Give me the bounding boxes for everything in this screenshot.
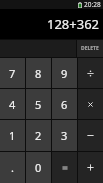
button[interactable]: 4: [0, 89, 25, 119]
button[interactable]: DELETE: [77, 40, 103, 57]
staticText: 6: [61, 97, 68, 112]
button[interactable]: Divide: [78, 58, 103, 88]
staticText: 20:28: [84, 0, 101, 9]
staticText: DELETE: [81, 45, 99, 52]
button[interactable]: 0: [26, 152, 51, 183]
other: Battery: [78, 2, 82, 8]
staticText: 8: [35, 66, 42, 81]
button[interactable]: Minus: [78, 120, 103, 151]
staticText: 9: [61, 66, 68, 81]
button[interactable]: .: [0, 152, 25, 183]
button[interactable]: 3: [52, 120, 77, 151]
staticText: 3: [61, 128, 68, 143]
button[interactable]: Multiply: [78, 89, 103, 119]
staticText: 4: [9, 97, 16, 112]
staticText: 2: [35, 128, 42, 143]
button[interactable]: 7: [0, 58, 25, 88]
button[interactable]: 9: [52, 58, 77, 88]
button[interactable]: 1: [0, 120, 25, 151]
staticText: 5: [35, 97, 42, 112]
button[interactable]: 8: [26, 58, 51, 88]
button[interactable]: Equals: [52, 152, 77, 183]
staticText: 1: [9, 128, 16, 143]
staticText: 7: [9, 66, 16, 81]
button[interactable]: 2: [26, 120, 51, 151]
button[interactable]: Plus: [78, 152, 103, 183]
staticText: .: [11, 160, 14, 175]
staticText: 0: [35, 160, 42, 175]
button[interactable]: 5: [26, 89, 51, 119]
staticText: 128+362: [46, 15, 99, 33]
button[interactable]: 6: [52, 89, 77, 119]
